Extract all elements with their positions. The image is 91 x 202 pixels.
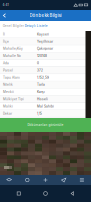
staticText: Mahalle/Köy xyxy=(3,47,23,51)
staticText: Yeşilhisar xyxy=(37,40,53,43)
button[interactable]: Detaylı Listele xyxy=(25,21,48,31)
staticText: 120148 xyxy=(37,54,47,58)
staticText: Tarla xyxy=(37,83,45,87)
staticText: 4:41 xyxy=(2,3,8,7)
staticText: 372 xyxy=(37,68,43,72)
button[interactable]: Back xyxy=(64,185,80,202)
button[interactable]: More xyxy=(73,175,91,185)
staticText: Ada xyxy=(3,61,9,65)
staticText: 1.152,59 xyxy=(37,76,49,79)
button[interactable]: Dökümanları görüntüle xyxy=(0,118,91,132)
button[interactable]: Layers xyxy=(0,175,18,185)
button[interactable]: Locate xyxy=(18,175,36,185)
staticText: Mülkiyet Tipi xyxy=(3,97,24,101)
button[interactable]: Back xyxy=(0,10,10,21)
staticText: Maliki xyxy=(3,104,13,108)
staticText: Detaylı Listele xyxy=(25,24,48,28)
staticText: 0 xyxy=(37,61,39,65)
staticText: Çakırpınar xyxy=(37,47,53,51)
staticText: Mahalle No xyxy=(3,54,21,58)
staticText: Parsel xyxy=(3,68,13,72)
staticText: Kayseri xyxy=(37,32,49,36)
button[interactable]: Home xyxy=(37,185,53,202)
staticText: Tapu Alanı xyxy=(3,76,20,79)
staticText: Dökümanları görüntüle xyxy=(27,123,63,127)
staticText: Hisseli xyxy=(37,97,48,101)
staticText: Dönbekk Bilgisi xyxy=(29,13,61,18)
button[interactable]: Genel Bilgiler xyxy=(3,21,25,31)
staticText: Mal Sahibi xyxy=(37,104,54,108)
staticText: Genel Bilgiler xyxy=(3,24,24,28)
staticText: Mevkii xyxy=(3,90,14,94)
staticText: İlçe xyxy=(3,40,9,43)
staticText: Dekar xyxy=(3,112,12,115)
button[interactable]: Recents xyxy=(11,185,27,202)
button[interactable]: Add xyxy=(36,175,55,185)
staticText: Karşı xyxy=(37,90,45,94)
staticText: 1,15 xyxy=(37,112,42,115)
button[interactable]: Navigate xyxy=(55,175,73,185)
staticText: İl xyxy=(3,32,5,36)
staticText: Nitelik xyxy=(3,83,13,87)
